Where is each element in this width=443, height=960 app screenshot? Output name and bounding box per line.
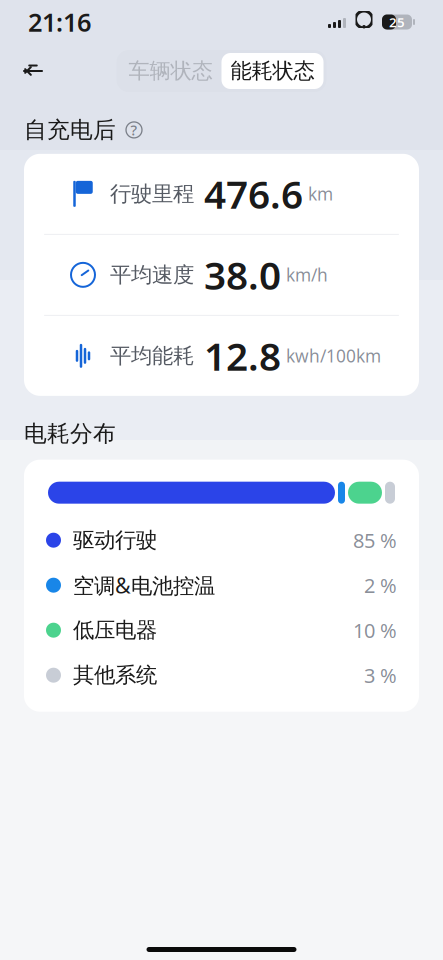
staticText: 电耗分布 [24, 420, 116, 448]
staticText: 12.8 [204, 330, 281, 381]
staticText: 21:16 [28, 5, 91, 39]
staticText: 10 % [353, 617, 397, 643]
staticText: ? [130, 120, 137, 140]
button[interactable]: Help [123, 119, 145, 141]
staticText: 38.0 [204, 249, 281, 300]
staticText: 其他系统 [73, 662, 157, 688]
staticText: km/h [286, 263, 328, 286]
staticText: 低压电器 [73, 617, 157, 643]
staticText: kwh/100km [286, 344, 381, 367]
staticText: 车辆状态 [128, 58, 212, 84]
staticText: 476.6 [204, 168, 303, 219]
button[interactable]: Back [10, 48, 56, 94]
button[interactable]: 能耗状态 [221, 53, 323, 89]
staticText: 25 [389, 13, 405, 31]
staticText: 平均能耗 [110, 343, 194, 369]
staticText: 3 % [364, 662, 397, 688]
staticText: 平均速度 [110, 262, 194, 288]
staticText: 空调&电池控温 [73, 571, 215, 599]
button[interactable]: 车辆状态 [119, 53, 221, 89]
staticText: km [308, 182, 333, 205]
staticText: 85 % [353, 527, 397, 553]
staticText: 行驶里程 [110, 181, 194, 207]
staticText: 自充电后 [24, 116, 116, 144]
staticText: 2 % [364, 572, 397, 598]
staticText: 驱动行驶 [73, 527, 157, 553]
staticText: 能耗状态 [230, 58, 314, 84]
